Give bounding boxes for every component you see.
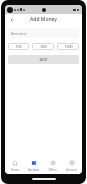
staticText: Add Money (30, 16, 57, 23)
button[interactable]: 100 (8, 43, 29, 50)
staticText: Offers (48, 168, 57, 172)
button[interactable]: Account (62, 158, 81, 174)
button[interactable]: Offers (43, 158, 62, 174)
button[interactable]: Amount (8, 28, 79, 38)
staticText: 100 (15, 44, 22, 49)
staticText: Account (66, 168, 77, 172)
button[interactable]: ADD (8, 55, 79, 64)
button[interactable]: Services (24, 158, 43, 174)
button[interactable]: Back (7, 15, 16, 24)
staticText: 1000 (64, 44, 73, 49)
button[interactable]: Home (6, 158, 24, 174)
button[interactable]: 500 (32, 43, 54, 50)
staticText: Amount (11, 31, 27, 36)
button[interactable]: 1000 (57, 43, 79, 50)
staticText: 500 (40, 44, 47, 49)
staticText: ADD (39, 57, 48, 62)
staticText: Home (11, 168, 19, 172)
staticText: Services (28, 168, 39, 172)
